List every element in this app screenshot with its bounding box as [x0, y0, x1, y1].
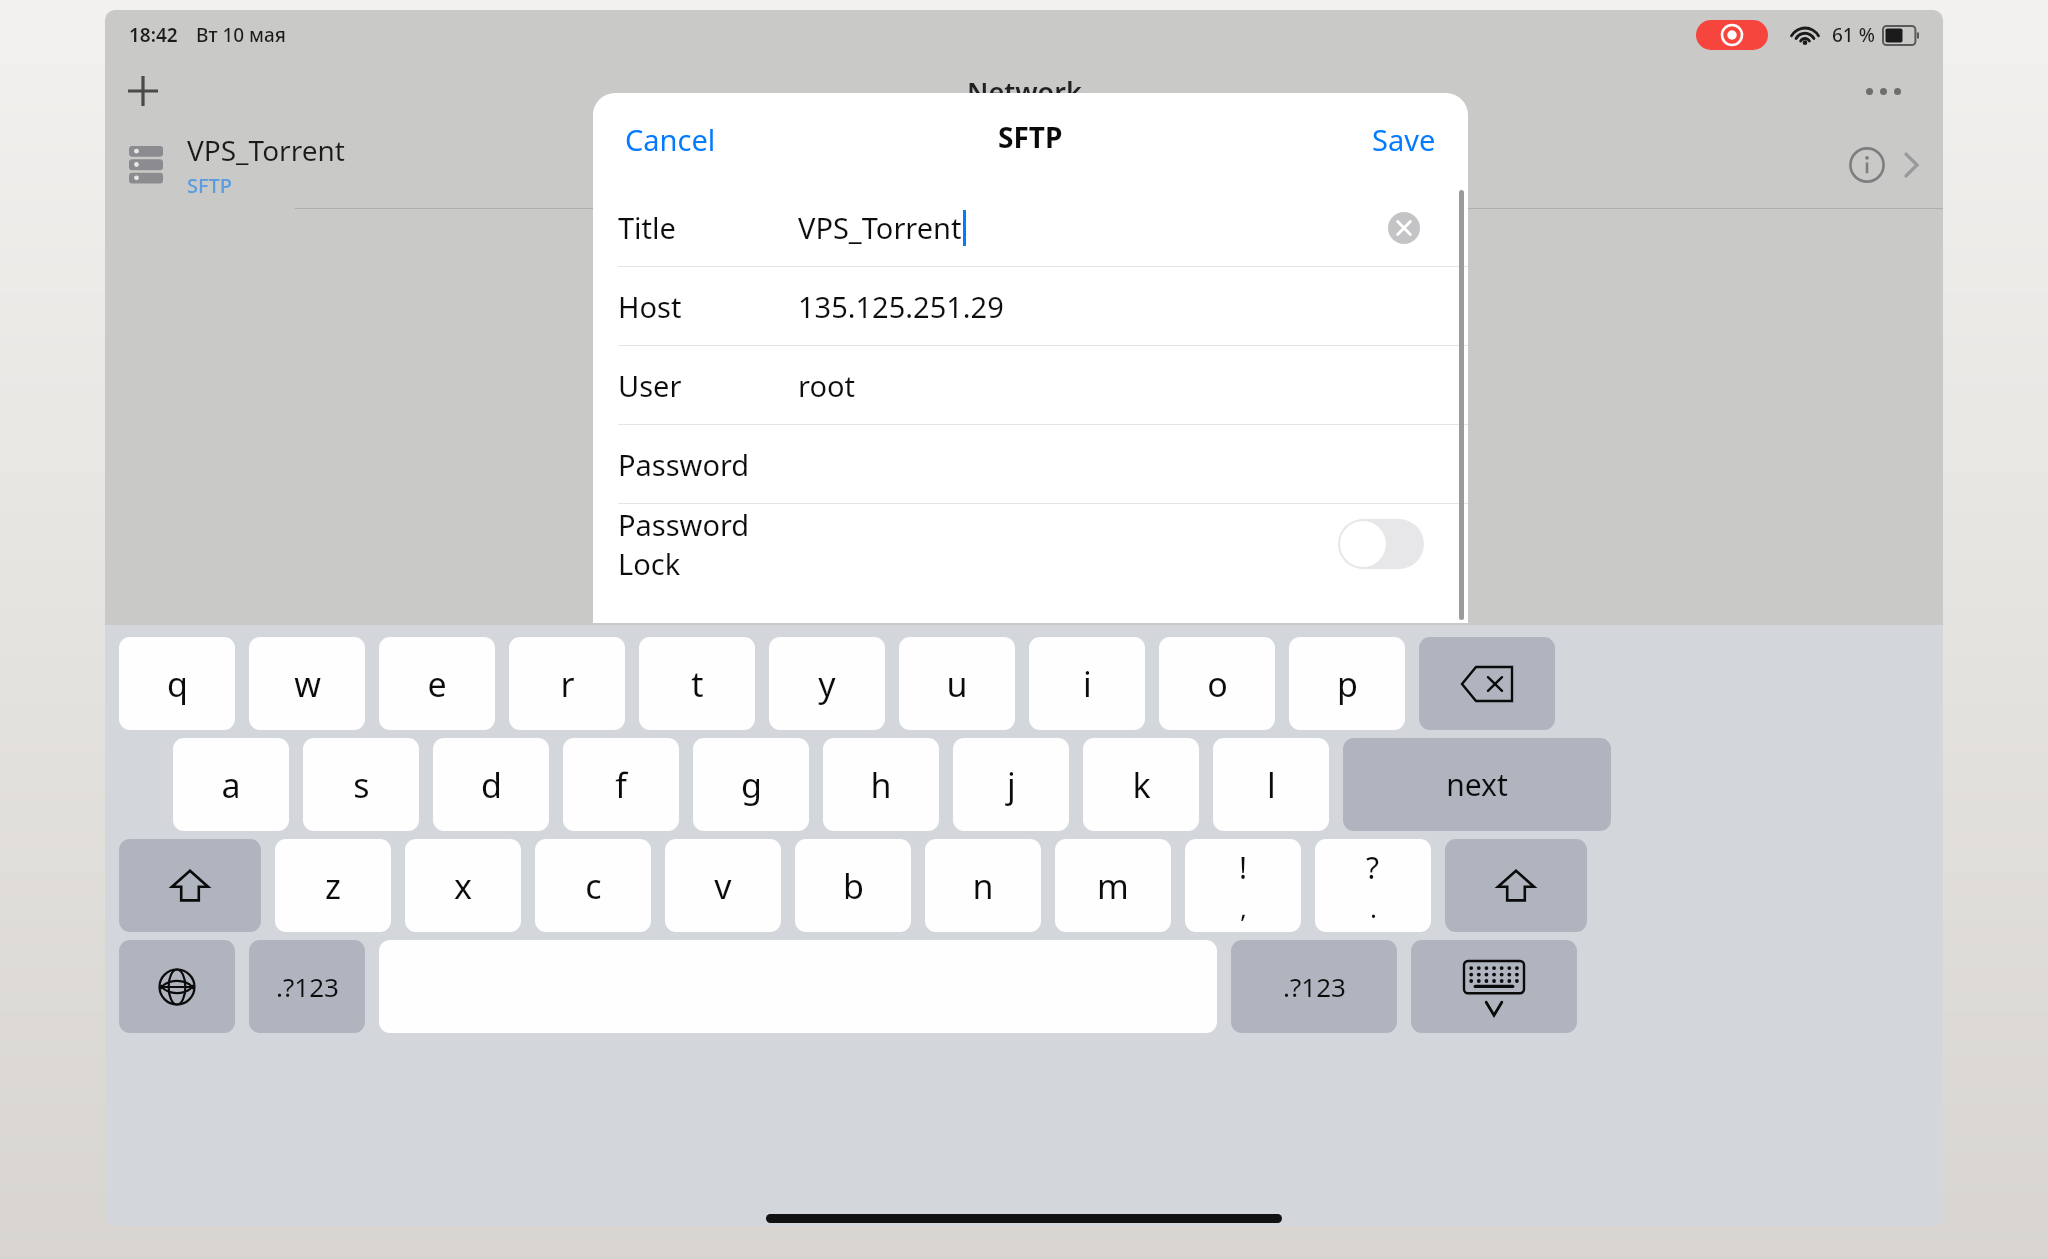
button[interactable]: r: [509, 637, 625, 730]
button[interactable]: c: [535, 839, 651, 932]
button[interactable]: z: [275, 839, 391, 932]
staticText: User: [618, 366, 682, 405]
button[interactable]: Change keyboard: [119, 940, 235, 1033]
staticText: j: [1007, 762, 1016, 808]
button[interactable]: Save: [1362, 114, 1446, 165]
staticText: Title: [618, 208, 676, 247]
button[interactable]: u: [899, 637, 1015, 730]
button[interactable]: k: [1083, 738, 1199, 831]
staticText: 18:42: [129, 22, 178, 48]
staticText: r: [560, 661, 575, 707]
button[interactable]: e: [379, 637, 495, 730]
staticText: a: [221, 762, 241, 808]
button[interactable]: .?123: [1231, 940, 1397, 1033]
staticText: .?123: [276, 969, 339, 1004]
staticText: o: [1207, 661, 1228, 707]
staticText: Host: [618, 287, 682, 326]
button[interactable]: Backspace: [1419, 637, 1555, 730]
button[interactable]: w: [249, 637, 365, 730]
button[interactable]: b: [795, 839, 911, 932]
button[interactable]: q: [119, 637, 235, 730]
staticText: Вт 10 мая: [196, 22, 286, 48]
button[interactable]: Password: [593, 425, 1468, 504]
button[interactable]: More options: [1853, 61, 1913, 121]
other: Battery 61 percent: [1883, 26, 1919, 45]
button[interactable]: Shift: [119, 839, 261, 932]
button[interactable]: Password Lock toggle: [1338, 519, 1424, 569]
staticText: SFTP: [187, 172, 232, 199]
staticText: ?: [1366, 847, 1380, 888]
staticText: Password: [618, 445, 750, 484]
button[interactable]: Info: [1839, 137, 1895, 193]
button[interactable]: Shift: [1445, 839, 1587, 932]
staticText: g: [741, 762, 762, 808]
staticText: root: [798, 366, 855, 405]
other: Screen recording: [1696, 20, 1768, 50]
staticText: VPS_Torrent: [798, 208, 962, 247]
staticText: n: [972, 863, 994, 909]
button[interactable]: m: [1055, 839, 1171, 932]
staticText: .?123: [1283, 969, 1346, 1004]
staticText: l: [1267, 762, 1276, 808]
staticText: .: [1370, 890, 1377, 925]
staticText: s: [353, 762, 370, 808]
button[interactable]: next: [1343, 738, 1611, 831]
button[interactable]: o: [1159, 637, 1275, 730]
button[interactable]: Hide keyboard: [1411, 940, 1577, 1033]
button[interactable]: d: [433, 738, 549, 831]
button[interactable]: Cancel: [615, 114, 726, 165]
button[interactable]: v: [665, 839, 781, 932]
staticText: x: [454, 863, 472, 909]
staticText: f: [615, 762, 627, 808]
staticText: m: [1097, 863, 1129, 909]
button[interactable]: j: [953, 738, 1069, 831]
button[interactable]: s: [303, 738, 419, 831]
button[interactable]: !: [1185, 839, 1301, 932]
staticText: SFTP: [998, 118, 1063, 156]
staticText: Network: [967, 73, 1082, 110]
staticText: 135.125.251.29: [798, 287, 1004, 326]
button[interactable]: .?123: [249, 940, 365, 1033]
button[interactable]: n: [925, 839, 1041, 932]
staticText: Password Lock: [618, 505, 798, 583]
button[interactable]: g: [693, 738, 809, 831]
button[interactable]: t: [639, 637, 755, 730]
button[interactable]: h: [823, 738, 939, 831]
button[interactable]: Add: [113, 61, 173, 121]
staticText: u: [946, 661, 968, 707]
button[interactable]: Title: [593, 188, 1468, 267]
button[interactable]: ?: [1315, 839, 1431, 932]
button[interactable]: Clear text: [1388, 212, 1420, 244]
staticText: z: [325, 863, 341, 909]
button[interactable]: User: [593, 346, 1468, 425]
button[interactable]: y: [769, 637, 885, 730]
staticText: !: [1239, 847, 1248, 888]
button[interactable]: x: [405, 839, 521, 932]
staticText: i: [1083, 661, 1092, 707]
staticText: e: [427, 661, 447, 707]
staticText: c: [585, 863, 602, 909]
staticText: Cancel: [625, 120, 716, 159]
staticText: v: [714, 863, 732, 909]
button[interactable]: i: [1029, 637, 1145, 730]
button[interactable]: a: [173, 738, 289, 831]
button[interactable]: Host: [593, 267, 1468, 346]
button[interactable]: f: [563, 738, 679, 831]
staticText: k: [1132, 762, 1151, 808]
staticText: VPS_Torrent: [187, 131, 345, 169]
staticText: d: [481, 762, 502, 808]
button[interactable]: p: [1289, 637, 1405, 730]
staticText: q: [167, 661, 188, 707]
staticText: p: [1337, 661, 1358, 707]
other: Wi-Fi: [1790, 23, 1820, 47]
button[interactable]: VPS_Torrent: [105, 122, 1943, 208]
staticText: next: [1446, 764, 1508, 805]
button[interactable]: Password Lock: [593, 504, 1468, 583]
button[interactable]: l: [1213, 738, 1329, 831]
staticText: t: [691, 661, 704, 707]
staticText: h: [870, 762, 892, 808]
staticText: ,: [1240, 890, 1247, 925]
staticText: y: [818, 661, 836, 707]
staticText: 61 %: [1832, 22, 1875, 48]
